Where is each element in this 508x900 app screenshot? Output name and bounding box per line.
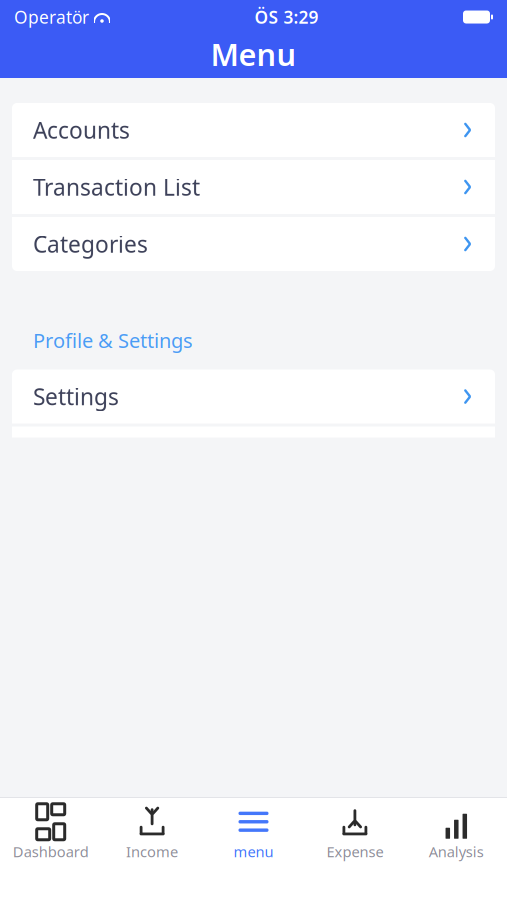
- button[interactable]: Expense: [304, 802, 406, 864]
- button[interactable]: Stakeholders: [12, 427, 495, 481]
- staticText: Menu: [210, 34, 296, 74]
- button[interactable]: menu: [203, 802, 304, 864]
- staticText: Profile & Settings: [33, 327, 193, 354]
- staticText: menu: [233, 842, 273, 861]
- staticText: Operatör: [14, 5, 89, 28]
- staticText: Income: [126, 842, 178, 861]
- staticText: ÖS 3:29: [254, 5, 318, 28]
- staticText: Accounts: [33, 115, 130, 145]
- button[interactable]: Settings: [12, 370, 495, 424]
- staticText: Expense: [326, 842, 383, 861]
- button[interactable]: Income: [101, 802, 203, 864]
- staticText: Dashboard: [13, 842, 89, 861]
- button[interactable]: Transaction List: [12, 160, 495, 214]
- button[interactable]: Categories: [12, 217, 495, 271]
- staticText: Analysis: [429, 842, 484, 861]
- staticText: Transaction List: [33, 172, 200, 202]
- staticText: Categories: [33, 229, 148, 259]
- button[interactable]: Accounts: [12, 103, 495, 157]
- button[interactable]: Dashboard: [0, 802, 101, 864]
- staticText: Settings: [33, 381, 119, 412]
- button[interactable]: Analysis: [406, 802, 507, 864]
